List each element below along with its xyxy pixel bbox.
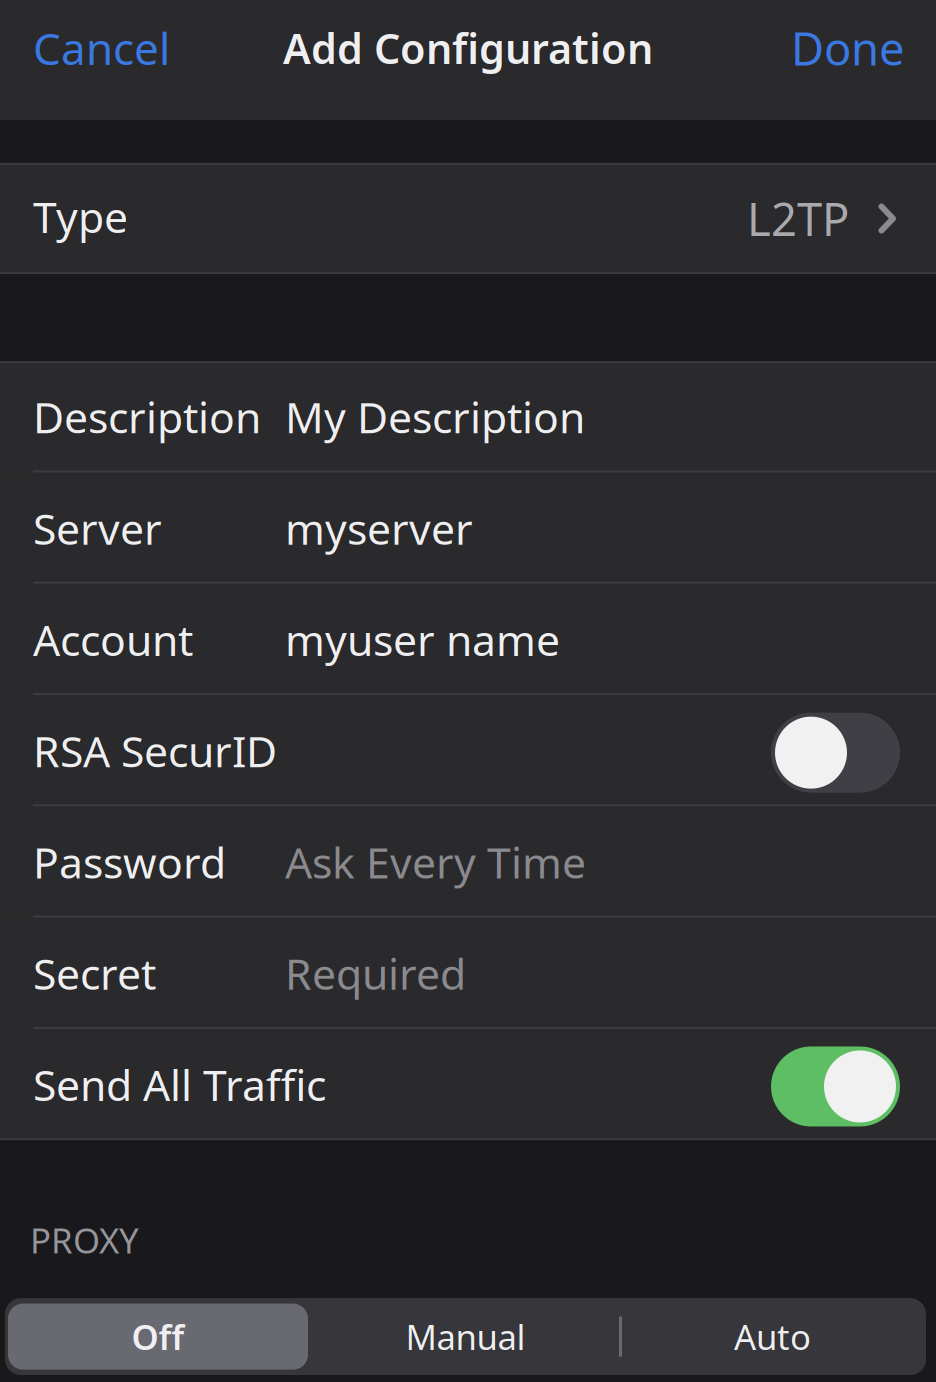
staticText: Password (33, 834, 226, 890)
staticText: Account (33, 611, 193, 668)
staticText: PROXY (30, 1217, 139, 1263)
staticText: Add Configuration (283, 20, 653, 75)
button[interactable]: Off (5, 1298, 312, 1375)
button[interactable]: Done (767, 0, 936, 96)
button[interactable]: Type (0, 163, 936, 274)
button[interactable]: Send All Traffic (0, 1029, 936, 1140)
button[interactable]: Description (0, 361, 936, 472)
staticText: Description (33, 388, 261, 445)
button[interactable]: Cancel (0, 0, 194, 96)
button[interactable]: Secret (0, 918, 936, 1029)
staticText: Manual (405, 1314, 525, 1360)
staticText: Done (791, 18, 905, 78)
staticText: Off (131, 1314, 184, 1360)
staticText: Ask Every Time (285, 834, 586, 890)
button[interactable]: Server (0, 472, 936, 584)
staticText: myserver (285, 500, 473, 556)
staticText: RSA SecurID (33, 722, 277, 779)
staticText: My Description (285, 388, 585, 445)
staticText: Required (285, 945, 466, 1002)
staticText: Type (33, 188, 128, 245)
staticText: Server (33, 500, 162, 556)
staticText: Auto (734, 1314, 811, 1360)
button[interactable]: Manual (312, 1298, 619, 1375)
staticText: Secret (33, 945, 156, 1002)
staticText: myuser name (285, 611, 560, 668)
button[interactable]: Password (0, 806, 936, 918)
button[interactable]: RSA SecurID (0, 695, 936, 806)
staticText: Cancel (33, 19, 170, 77)
button[interactable]: Account (0, 584, 936, 695)
staticText: L2TP (747, 188, 849, 249)
button[interactable]: Auto (619, 1298, 926, 1375)
staticText: Send All Traffic (33, 1056, 326, 1113)
